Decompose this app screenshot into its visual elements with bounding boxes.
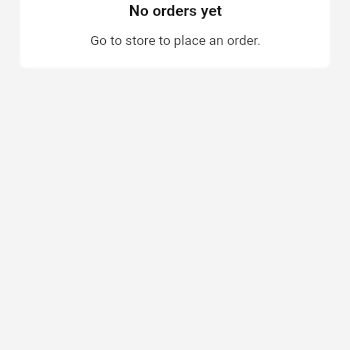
staticText: Go to store to place an order. [90,33,261,49]
button[interactable]: No orders yet [20,0,330,68]
staticText: No orders yet [129,2,222,20]
